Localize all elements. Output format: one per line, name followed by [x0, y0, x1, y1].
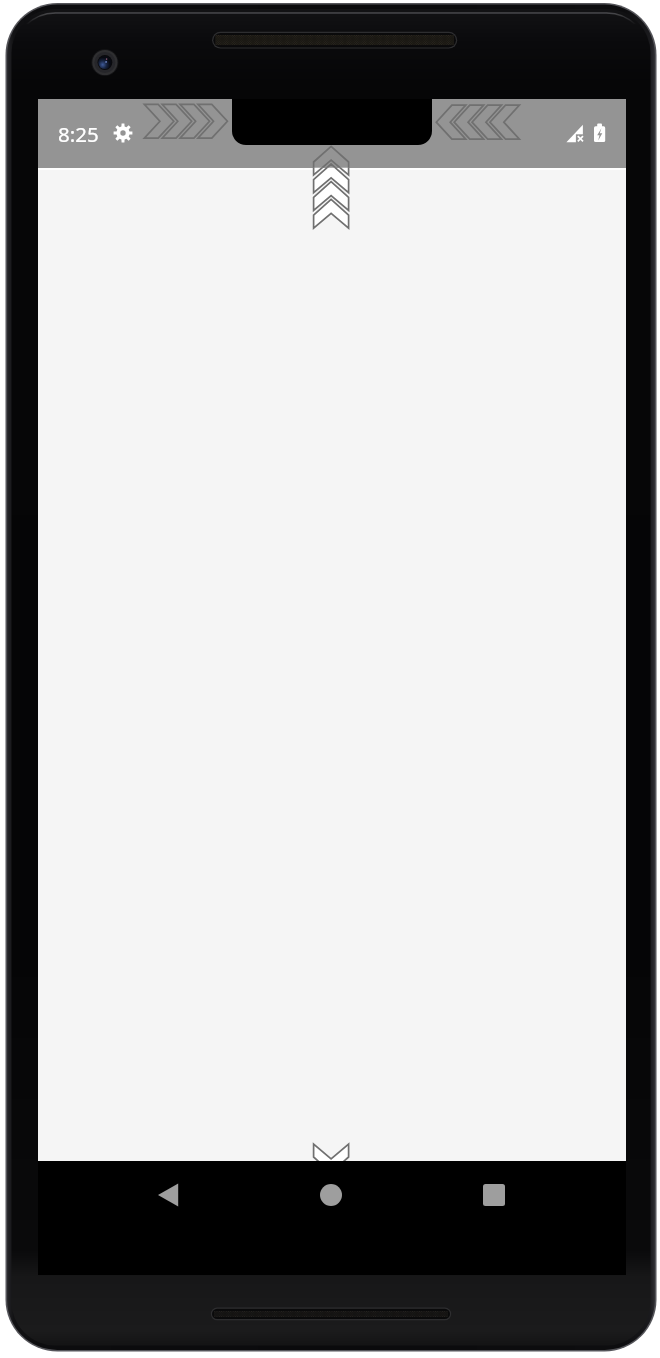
- button[interactable]: Recents: [446, 1161, 542, 1231]
- button[interactable]: Home: [283, 1161, 379, 1231]
- button[interactable]: Back: [120, 1161, 216, 1231]
- staticText: 8:25: [58, 120, 99, 148]
